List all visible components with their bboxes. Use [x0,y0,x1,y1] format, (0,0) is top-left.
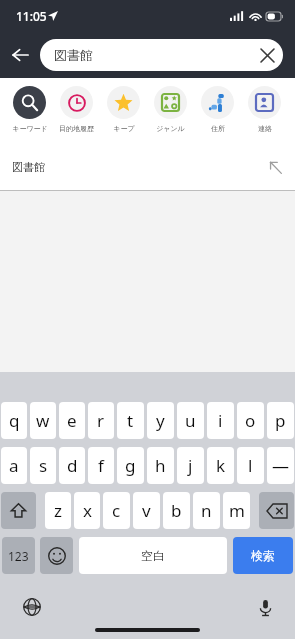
staticText: z [54,499,62,522]
staticText: a [9,454,19,477]
staticText: r [97,409,105,432]
button[interactable]: 空白 [79,537,227,574]
button[interactable]: ジャンル [147,78,194,144]
staticText: j [188,454,193,477]
button[interactable]: i [207,402,234,439]
button[interactable]: 住所 [194,78,241,144]
button[interactable]: c [103,492,130,529]
button[interactable]: w [30,402,56,439]
staticText: o [245,409,256,432]
staticText: d [67,454,78,477]
staticText: t [127,409,134,432]
button[interactable]: Clear [251,39,283,71]
staticText: s [39,454,48,477]
staticText: g [125,454,136,477]
staticText: l [248,454,253,477]
button[interactable]: e [59,402,85,439]
button[interactable]: Emoji [40,537,73,574]
staticText: 図書館 [12,160,255,174]
staticText: b [171,499,182,522]
staticText: 123 [8,548,29,564]
button[interactable]: a [1,447,27,484]
staticText: 11:05 [16,8,47,24]
button[interactable]: l [237,447,264,484]
staticText: v [142,499,151,522]
staticText: 目的地履歴 [59,124,94,133]
staticText: 図書館 [54,47,251,63]
button[interactable]: k [207,447,234,484]
staticText: u [185,409,196,432]
staticText: ジャンル [156,124,185,133]
button[interactable]: u [177,402,204,439]
button[interactable]: m [223,492,250,529]
button[interactable]: Insert query [255,147,295,187]
button[interactable]: y [147,402,174,439]
staticText: m [229,499,245,522]
button[interactable]: s [30,447,56,484]
button[interactable]: 検索 [233,537,293,574]
button[interactable]: n [193,492,220,529]
button[interactable]: j [177,447,204,484]
button[interactable]: r [88,402,114,439]
button[interactable]: Backspace [259,492,294,529]
staticText: f [98,454,104,477]
button[interactable]: Voice input [251,593,279,621]
staticText: i [218,409,223,432]
staticText: c [112,499,121,522]
staticText: 住所 [211,124,225,133]
button[interactable]: — [267,447,294,484]
staticText: 検索 [251,548,275,563]
button[interactable]: キープ [100,78,147,144]
staticText: キープ [113,124,135,133]
staticText: e [67,409,77,432]
button[interactable]: Back [0,32,40,78]
button[interactable]: g [117,447,144,484]
button[interactable]: 目的地履歴 [53,78,100,144]
button[interactable]: p [267,402,294,439]
staticText: 連絡 [258,124,272,133]
button[interactable]: Switch language [18,593,46,621]
staticText: p [275,409,286,432]
staticText: — [272,454,289,477]
staticText: n [201,499,212,522]
button[interactable]: 連絡 [241,78,288,144]
button[interactable]: q [1,402,27,439]
staticText: h [155,454,166,477]
button[interactable]: v [133,492,160,529]
staticText: x [83,499,92,522]
button[interactable]: d [59,447,85,484]
button[interactable]: x [74,492,100,529]
button[interactable]: o [237,402,264,439]
button[interactable]: 図書館 [40,39,283,71]
button[interactable]: z [45,492,71,529]
staticText: w [36,409,50,432]
button[interactable]: Shift [1,492,36,529]
staticText: k [216,454,226,477]
staticText: y [156,409,165,432]
staticText: キーワード [12,124,48,133]
button[interactable]: b [163,492,190,529]
button[interactable]: 図書館 [0,144,295,190]
button[interactable]: f [88,447,114,484]
button[interactable]: 123 [2,537,35,574]
button[interactable]: キーワード [6,78,53,144]
button[interactable]: h [147,447,174,484]
button[interactable]: t [117,402,144,439]
staticText: 空白 [141,548,165,563]
staticText: q [9,409,20,432]
